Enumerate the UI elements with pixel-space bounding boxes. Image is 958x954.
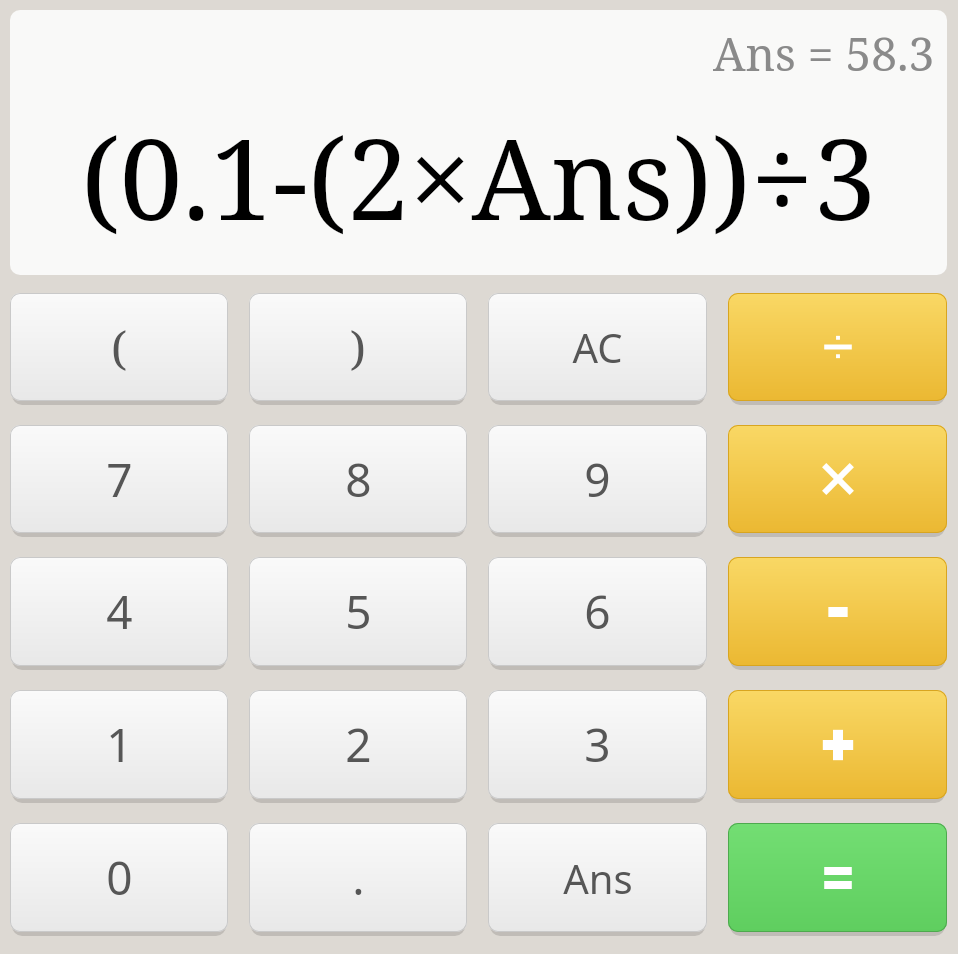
staticText: 4 <box>106 580 133 643</box>
button[interactable]: 9 <box>488 425 707 533</box>
button[interactable]: Add <box>728 690 947 799</box>
button[interactable]: Equals <box>728 823 947 932</box>
staticText: 2 <box>345 713 372 776</box>
button[interactable]: 5 <box>249 557 467 666</box>
button[interactable]: 3 <box>488 690 707 799</box>
button[interactable]: AC <box>488 293 707 401</box>
staticText: 8 <box>345 448 372 511</box>
staticText: 1 <box>106 713 133 776</box>
staticText: ( <box>111 316 127 379</box>
staticText: 0 <box>106 846 133 909</box>
staticText: 9 <box>584 448 611 511</box>
button[interactable]: 2 <box>249 690 467 799</box>
button[interactable]: ) <box>249 293 467 401</box>
button[interactable]: Ans <box>488 823 707 932</box>
button[interactable]: 7 <box>10 425 228 533</box>
button[interactable]: 4 <box>10 557 228 666</box>
staticText: 5 <box>345 580 372 643</box>
button[interactable]: . <box>249 823 467 932</box>
button[interactable]: Subtract <box>728 557 947 666</box>
button[interactable]: Divide <box>728 293 947 401</box>
staticText: ) <box>350 316 366 379</box>
staticText: 6 <box>584 580 611 643</box>
button[interactable]: 6 <box>488 557 707 666</box>
staticText: 3 <box>584 713 611 776</box>
button[interactable]: ( <box>10 293 228 401</box>
staticText: (0.1-(2×Ans))÷3 <box>81 100 877 253</box>
staticText: AC <box>572 320 623 374</box>
staticText: 7 <box>106 448 133 511</box>
staticText: Ans = 58.3 <box>713 22 935 85</box>
button[interactable]: 1 <box>10 690 228 799</box>
button[interactable]: Multiply <box>728 425 947 533</box>
button[interactable]: 8 <box>249 425 467 533</box>
staticText: . <box>352 846 365 909</box>
button[interactable]: 0 <box>10 823 228 932</box>
staticText: Ans <box>563 851 633 905</box>
